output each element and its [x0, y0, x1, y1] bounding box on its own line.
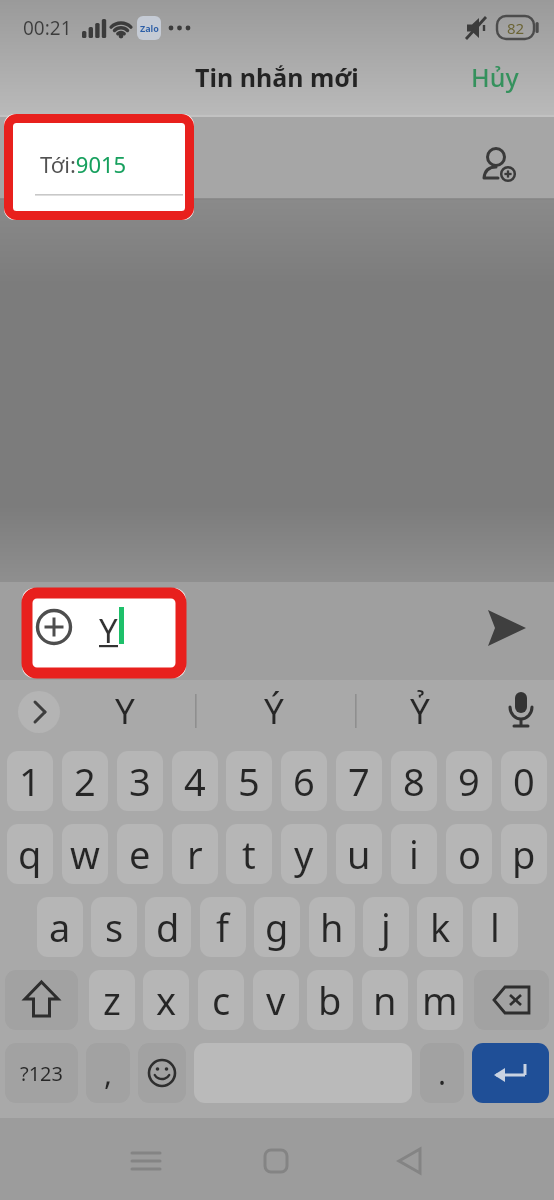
staticText: Tin nhắn mới — [195, 60, 359, 94]
button[interactable]: p — [501, 824, 547, 884]
staticText: m — [422, 974, 458, 1026]
staticText: z — [103, 974, 121, 1026]
button[interactable]: Hủy — [455, 55, 535, 99]
button[interactable] — [138, 1043, 186, 1103]
staticText: 82 — [507, 18, 525, 38]
button[interactable]: . — [420, 1043, 464, 1103]
button[interactable] — [386, 1140, 434, 1182]
button[interactable] — [200, 118, 554, 198]
button[interactable] — [5, 970, 78, 1030]
staticText: i — [409, 828, 419, 880]
staticText: ?123 — [20, 1060, 63, 1087]
button[interactable] — [4, 114, 194, 220]
staticText: e — [129, 828, 151, 880]
button[interactable] — [120, 1140, 172, 1182]
staticText: l — [490, 901, 500, 953]
staticText: 0 — [513, 755, 535, 807]
staticText: Zalo — [140, 22, 159, 34]
staticText: c — [212, 974, 231, 1026]
staticText: Y — [99, 608, 118, 646]
button[interactable]: q — [7, 824, 53, 884]
button[interactable]: , — [86, 1043, 130, 1103]
staticText: f — [216, 901, 230, 953]
staticText: a — [49, 901, 71, 953]
staticText: Hủy — [471, 60, 519, 94]
staticText: x — [156, 974, 177, 1026]
button[interactable]: 9 — [446, 751, 492, 811]
button[interactable]: f — [200, 897, 246, 957]
button[interactable] — [474, 970, 549, 1030]
staticText: o — [458, 828, 481, 880]
button[interactable]: n — [362, 970, 408, 1030]
button[interactable]: u — [336, 824, 382, 884]
button[interactable]: 6 — [281, 751, 327, 811]
staticText: u — [347, 828, 371, 880]
button[interactable]: 4 — [172, 751, 218, 811]
button[interactable] — [482, 604, 532, 652]
button[interactable]: e — [117, 824, 163, 884]
button[interactable]: Ỷ — [385, 684, 455, 738]
button[interactable]: 7 — [336, 751, 382, 811]
staticText: 5 — [238, 755, 260, 807]
staticText: 4 — [184, 755, 206, 807]
staticText: y — [294, 828, 314, 880]
button[interactable]: h — [309, 897, 355, 957]
button[interactable]: Ý — [239, 684, 309, 738]
staticText: 8 — [403, 755, 425, 807]
staticText: v — [266, 974, 286, 1026]
button[interactable]: i — [391, 824, 437, 884]
button[interactable]: g — [254, 897, 300, 957]
button[interactable]: r — [172, 824, 218, 884]
button[interactable]: a — [37, 897, 83, 957]
button[interactable]: z — [89, 970, 135, 1030]
staticText: k — [430, 901, 451, 953]
button[interactable] — [472, 1043, 549, 1103]
button[interactable]: w — [62, 824, 108, 884]
button[interactable]: ?123 — [5, 1043, 78, 1103]
staticText: 7 — [348, 755, 370, 807]
button[interactable]: k — [417, 897, 463, 957]
button[interactable]: j — [363, 897, 409, 957]
button[interactable]: 0 — [501, 751, 547, 811]
staticText: r — [187, 828, 203, 880]
button[interactable]: y — [281, 824, 327, 884]
button[interactable] — [498, 688, 544, 734]
button[interactable]: t — [226, 824, 272, 884]
staticText: , — [104, 1053, 113, 1094]
staticText: Y — [115, 687, 135, 735]
button[interactable] — [22, 588, 186, 678]
staticText: Ý — [264, 687, 284, 735]
button[interactable]: v — [253, 970, 299, 1030]
button[interactable]: s — [91, 897, 137, 957]
staticText: 2 — [74, 755, 96, 807]
button[interactable]: d — [145, 897, 191, 957]
button[interactable]: o — [446, 824, 492, 884]
button[interactable]: c — [198, 970, 244, 1030]
button[interactable]: 1 — [7, 751, 53, 811]
staticText: n — [373, 974, 397, 1026]
staticText: b — [318, 974, 342, 1026]
staticText: p — [512, 828, 536, 880]
staticText: j — [381, 901, 391, 953]
staticText: Ỷ — [410, 687, 430, 735]
staticText: w — [70, 828, 100, 880]
button[interactable]: m — [417, 970, 463, 1030]
staticText: 6 — [293, 755, 315, 807]
button[interactable]: x — [143, 970, 189, 1030]
button[interactable] — [252, 1140, 300, 1182]
staticText: 9 — [458, 755, 480, 807]
button[interactable]: 3 — [117, 751, 163, 811]
button[interactable]: 5 — [226, 751, 272, 811]
button[interactable]: b — [307, 970, 353, 1030]
button[interactable]: 8 — [391, 751, 437, 811]
staticText: 1 — [19, 755, 41, 807]
button[interactable]: 2 — [62, 751, 108, 811]
button[interactable]: Y — [90, 684, 160, 738]
button[interactable] — [474, 140, 520, 186]
staticText: t — [242, 828, 256, 880]
button[interactable] — [18, 691, 60, 733]
staticText: d — [156, 901, 180, 953]
button[interactable]: l — [472, 897, 518, 957]
